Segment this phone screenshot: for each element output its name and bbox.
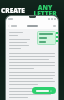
staticText: CREATE (0, 6, 26, 15)
button[interactable] (39, 41, 54, 43)
button[interactable] (39, 33, 54, 35)
button[interactable] (39, 37, 54, 39)
staticText: ANY LETTER (26, 3, 64, 18)
button[interactable]: Back (8, 25, 17, 27)
button[interactable]: More options (53, 25, 56, 27)
button[interactable]: Generate letter (32, 87, 56, 94)
staticText: YOU WANT (14, 18, 51, 27)
